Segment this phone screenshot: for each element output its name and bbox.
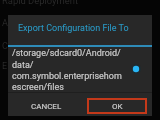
- staticText: C: [2, 41, 8, 52]
- staticText: OK: [112, 102, 123, 111]
- button[interactable]: CANCEL: [17, 98, 76, 114]
- staticText: Rapid Deployment: [2, 0, 78, 6]
- staticText: CANCEL: [31, 102, 62, 111]
- staticText: /storage/sdcard0/Android/ data/ com.symb…: [12, 48, 140, 92]
- staticText: Export Configuration File To: [18, 23, 129, 34]
- button[interactable]: OK: [87, 98, 147, 114]
- staticText: E: [2, 61, 8, 72]
- staticText: A: [2, 18, 8, 29]
